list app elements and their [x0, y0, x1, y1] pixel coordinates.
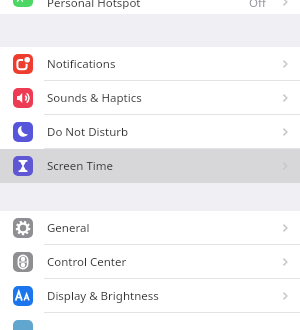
staticText: Display & Brightness [47, 288, 159, 304]
button[interactable]: General [0, 211, 300, 245]
button[interactable]: Control Center [0, 245, 300, 279]
button[interactable]: Do Not Disturb [0, 115, 300, 149]
staticText: General [47, 220, 90, 236]
button[interactable]: Sounds & Haptics [0, 81, 300, 115]
staticText: Control Center [47, 254, 127, 270]
button[interactable]: Notifications [0, 47, 300, 81]
button[interactable]: Display & Brightness [0, 279, 300, 313]
staticText: Personal Hotspot [47, 0, 141, 9]
staticText: Screen Time [47, 158, 114, 174]
button[interactable]: Screen Time [0, 149, 300, 183]
staticText: Sounds & Haptics [47, 90, 142, 106]
button[interactable]: Wallpaper [0, 313, 300, 330]
staticText: Do Not Disturb [47, 124, 129, 140]
button[interactable]: Personal Hotspot [0, 0, 300, 14]
staticText: Notifications [47, 56, 116, 72]
staticText: Off [249, 0, 266, 9]
